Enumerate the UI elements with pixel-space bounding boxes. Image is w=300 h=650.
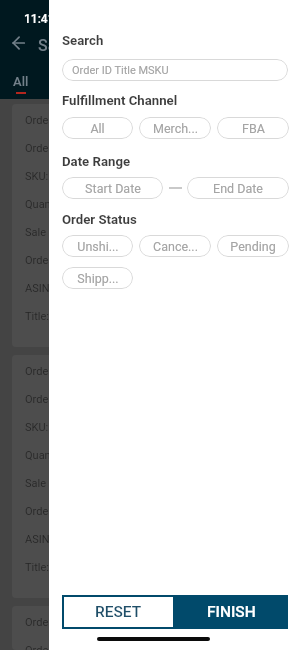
staticText: Shipp... xyxy=(77,271,119,286)
staticText: RESET xyxy=(95,603,142,621)
staticText: Sale Price: $24.99 xyxy=(25,226,113,239)
staticText: Order ID Title MSKU xyxy=(72,64,169,77)
staticText: All xyxy=(13,74,29,89)
button[interactable]: Order Date: 2024-05-12 xyxy=(12,104,288,347)
button[interactable]: FBA xyxy=(95,66,145,98)
staticText: Start Date xyxy=(85,181,141,196)
staticText: Search xyxy=(62,33,104,48)
staticText: Order Date: 2024-05-12 xyxy=(25,114,139,127)
button[interactable]: Merch... xyxy=(139,117,211,139)
button[interactable]: End Date xyxy=(187,177,289,199)
staticText: Date Range xyxy=(62,154,131,169)
staticText: Order ID: 111-2233445-6677889 xyxy=(25,393,182,406)
staticText: Order ID: 111-2233445-6677889 xyxy=(25,142,182,155)
button[interactable]: RESET xyxy=(62,595,175,629)
staticText: ASIN: B07XJ8C8F5 xyxy=(25,282,119,295)
staticText: Order Date: 2024-05-12 xyxy=(25,365,139,378)
staticText: 11:41 xyxy=(24,12,55,26)
button[interactable]: Pending xyxy=(217,235,289,257)
button[interactable]: Back xyxy=(9,31,33,55)
button[interactable]: Order Date: 2024-05-12 xyxy=(12,606,288,650)
staticText: MFN xyxy=(54,74,82,89)
staticText: Order Status: Shipped xyxy=(25,505,132,518)
staticText: Cance... xyxy=(153,239,198,254)
staticText: Order Status xyxy=(62,212,137,227)
staticText: Fulfillment Channel xyxy=(62,93,178,108)
staticText: SKU: ABC-1234-XYZ xyxy=(25,421,124,434)
staticText: Order Status: Shipped xyxy=(25,254,132,267)
staticText: All xyxy=(90,121,105,136)
staticText: End Date xyxy=(213,181,263,196)
button[interactable]: Unshi... xyxy=(62,235,133,257)
staticText: Sale Price: $24.99 xyxy=(25,477,113,490)
staticText: Quantity: 2 xyxy=(25,198,78,211)
staticText: Merch... xyxy=(153,121,198,136)
button[interactable]: Cance... xyxy=(139,235,211,257)
button[interactable]: Start Date xyxy=(62,177,163,199)
button[interactable]: FBA xyxy=(217,117,289,139)
button[interactable]: All xyxy=(0,66,41,98)
staticText: Pending xyxy=(230,239,276,254)
staticText: Order ID: 111-2233445-6677889 xyxy=(25,644,182,650)
staticText: Unshi... xyxy=(77,239,119,254)
staticText: ASIN: B07XJ8C8F5 xyxy=(25,533,119,546)
staticText: Sales xyxy=(38,36,78,55)
button[interactable]: MFN xyxy=(41,66,95,98)
staticText: Title: Wireless Bluetooth xyxy=(25,561,144,574)
button[interactable]: All xyxy=(62,117,133,139)
staticText: FBA xyxy=(108,74,133,89)
staticText: Quantity: 2 xyxy=(25,449,78,462)
staticText: FINISH xyxy=(207,603,256,621)
button[interactable]: FINISH xyxy=(175,595,288,629)
button[interactable]: Shipp... xyxy=(62,267,133,289)
staticText: Title: Wireless Bluetooth xyxy=(25,310,144,323)
button[interactable]: Order Date: 2024-05-12 xyxy=(12,355,288,598)
staticText: FBA xyxy=(242,121,265,136)
staticText: Order Date: 2024-05-12 xyxy=(25,616,139,629)
staticText: SKU: ABC-1234-XYZ xyxy=(25,170,124,183)
button[interactable]: Order ID Title MSKU xyxy=(62,59,288,81)
